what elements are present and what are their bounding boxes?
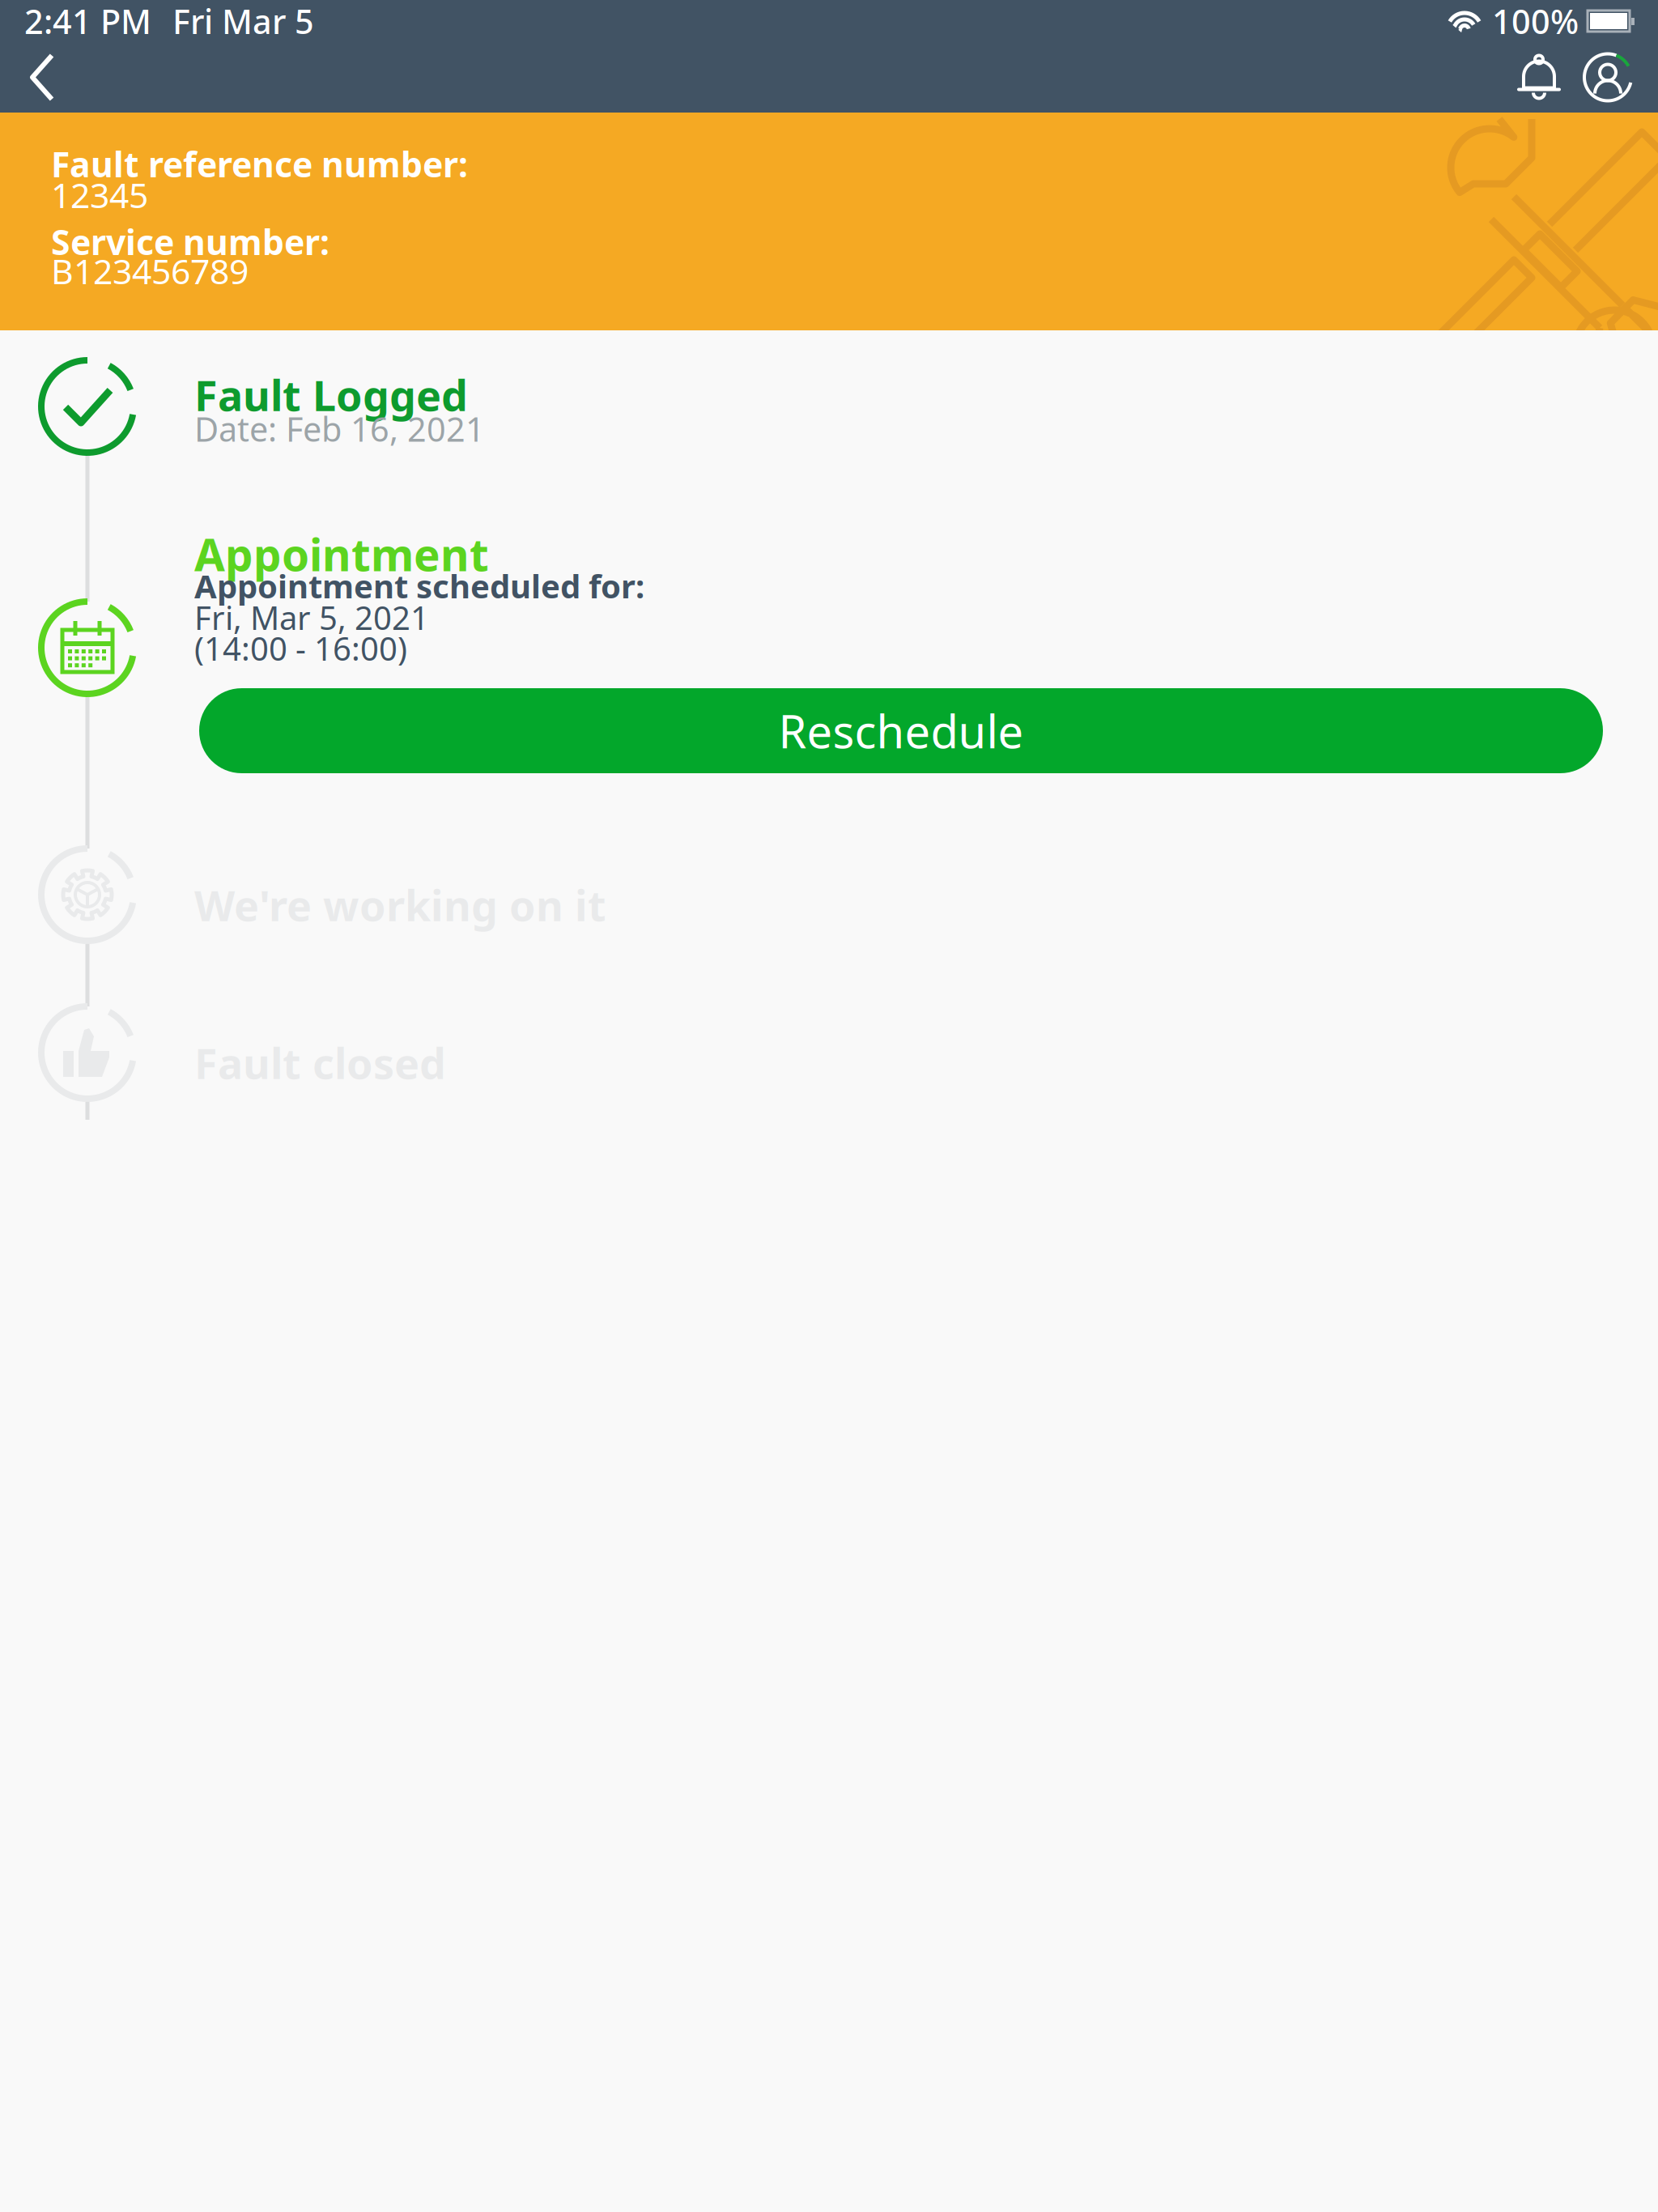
staticText: Service number: (51, 219, 329, 265)
staticText: Appointment scheduled for: (194, 564, 644, 607)
staticText: We're working on it (194, 877, 606, 933)
staticText: (14:00 - 16:00) (194, 627, 407, 670)
button[interactable]: Profile (1582, 51, 1634, 103)
button[interactable]: Notifications (1517, 52, 1562, 102)
button[interactable]: Back (23, 49, 70, 106)
staticText: Fri, Mar 5, 2021 (194, 596, 429, 639)
staticText: 12345 (51, 172, 148, 218)
staticText: 100% (1492, 0, 1579, 43)
staticText: Date: Feb 16, 2021 (194, 406, 485, 451)
staticText: B123456789 (51, 248, 249, 294)
staticText: Reschedule (778, 701, 1024, 761)
staticText: Fault reference number: (51, 141, 468, 187)
staticText: Fault closed (194, 1035, 446, 1091)
staticText: Fri Mar 5 (172, 0, 314, 43)
button[interactable]: Reschedule (199, 688, 1603, 773)
staticText: 2:41 PM (24, 0, 151, 43)
staticText: Appointment (194, 525, 489, 583)
staticText: Fault Logged (194, 367, 468, 423)
